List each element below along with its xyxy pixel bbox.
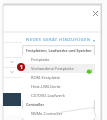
staticText: Festplatten, Laufwerke und Speicher — [26, 48, 92, 53]
staticText: ROM-Festplatte — [31, 75, 61, 80]
staticText: ▾ — [93, 38, 96, 43]
staticText: Controller — [26, 102, 45, 107]
button[interactable]: ROM-Festplatte — [22, 73, 95, 82]
button[interactable]: Schließen — [89, 7, 101, 19]
button[interactable]: CD/DVD-Laufwerk — [22, 91, 95, 100]
staticText: CD/DVD-Laufwerk — [31, 93, 65, 98]
staticText: Vorhandene Festplatte — [31, 66, 74, 71]
button[interactable]: Host-USB-Gerät — [22, 82, 95, 91]
staticText: NEUES GERÄT HINZUFÜGEN — [26, 37, 91, 43]
button[interactable]: NEUES GERÄT HINZUFÜGEN — [26, 37, 96, 43]
button[interactable]: Vorhandene Festplatte — [22, 64, 95, 73]
staticText: Festplatte — [31, 57, 50, 62]
staticText: Host-USB-Gerät — [31, 84, 61, 89]
other: Zeiger — [86, 66, 92, 74]
staticText: 1 — [20, 64, 23, 71]
button[interactable]: Festplatte — [22, 55, 95, 64]
staticText: NVMe-Controller — [31, 111, 63, 116]
button[interactable]: NVMe-Controller — [22, 109, 95, 118]
